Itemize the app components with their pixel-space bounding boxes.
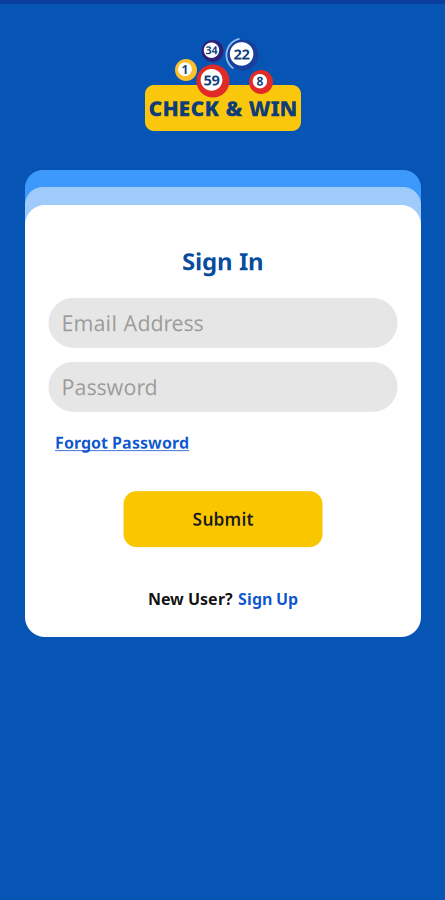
staticText: Forgot Password xyxy=(55,432,189,453)
button[interactable]: Forgot Password xyxy=(55,432,189,453)
staticText: CHECK & WIN xyxy=(148,94,297,122)
staticText: 59 xyxy=(203,70,219,90)
staticText: Sign In xyxy=(182,245,264,277)
staticText: 1 xyxy=(181,61,188,77)
button[interactable]: Email Address xyxy=(48,298,397,348)
button[interactable]: Sign Up xyxy=(238,588,298,609)
staticText: 34 xyxy=(205,43,217,57)
staticText: Submit xyxy=(192,508,253,531)
staticText: New User? xyxy=(148,588,233,609)
button[interactable]: Password xyxy=(48,362,397,412)
staticText: Email Address xyxy=(61,309,203,337)
staticText: 8 xyxy=(256,73,263,89)
staticText: Sign Up xyxy=(238,588,298,609)
staticText: 22 xyxy=(234,44,250,64)
button[interactable]: Submit xyxy=(123,491,322,547)
staticText: Password xyxy=(61,373,157,401)
